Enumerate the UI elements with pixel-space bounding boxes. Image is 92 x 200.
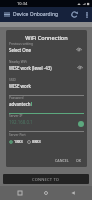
button[interactable]: OK	[74, 157, 84, 164]
button[interactable]: Recents	[13, 186, 27, 200]
staticText: WISE work (level -43)	[9, 65, 52, 71]
staticText: Nearby WiFi	[9, 60, 27, 64]
button[interactable]: Menu	[0, 8, 13, 21]
button[interactable]: CANCEL	[53, 157, 71, 164]
button[interactable]: SSID	[9, 78, 84, 96]
button[interactable]: Home	[39, 186, 53, 200]
button[interactable]: 8883	[27, 139, 41, 144]
staticText: Device Onboarding	[13, 11, 59, 18]
button[interactable]: More options	[81, 9, 92, 20]
staticText: 1883	[14, 139, 23, 144]
staticText: Password	[9, 96, 24, 100]
button[interactable]: 1883	[9, 139, 23, 144]
staticText: 10:34	[17, 1, 28, 6]
button[interactable]: Server IP	[9, 114, 84, 132]
staticText: 8883	[32, 139, 41, 144]
button[interactable]: Back	[66, 186, 80, 200]
staticText: SSID	[9, 78, 16, 82]
staticText: Server IP	[9, 114, 23, 118]
staticText: Select One	[9, 47, 31, 53]
staticText: WiFi Connection	[6, 34, 87, 42]
staticText: CANCEL	[55, 158, 69, 163]
button[interactable]: Scan	[78, 121, 84, 127]
staticText: WISE work	[9, 83, 31, 89]
button[interactable]: Refresh	[68, 8, 81, 21]
button[interactable]: Password	[9, 96, 84, 114]
staticText: Server Port	[9, 133, 26, 137]
button[interactable]: Previous setting	[9, 42, 84, 60]
staticText: OK	[76, 158, 82, 163]
staticText: CONNECT TO	[32, 177, 60, 182]
button[interactable]: CONNECT TO	[3, 174, 89, 184]
staticText: 192.168.0.1	[9, 119, 33, 125]
staticText: advantech	[9, 101, 31, 107]
staticText: Previous setting	[9, 42, 33, 46]
button[interactable]: Nearby WiFi	[9, 60, 84, 78]
